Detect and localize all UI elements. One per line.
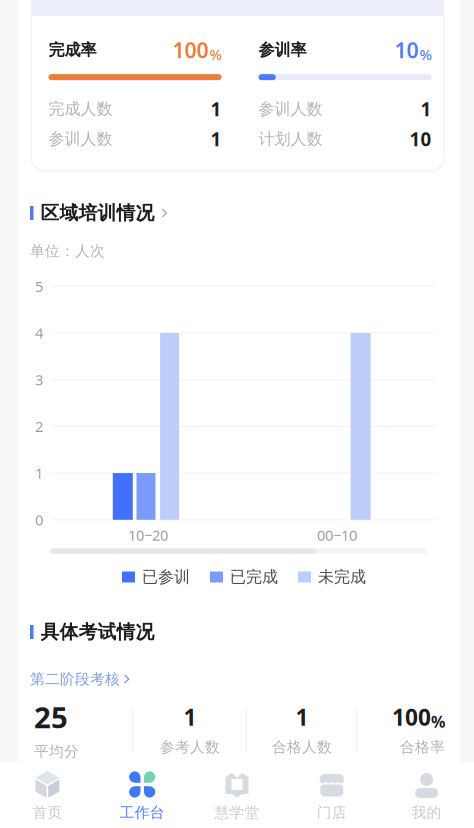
staticText: 门店 xyxy=(317,803,347,821)
button[interactable]: 首页 xyxy=(0,762,95,828)
staticText: 100 xyxy=(392,702,431,732)
staticText: % xyxy=(431,711,445,732)
staticText: 1 xyxy=(183,702,196,732)
staticText: % xyxy=(419,45,431,64)
staticText: 计划人数 xyxy=(258,129,322,149)
staticText: 首页 xyxy=(32,803,62,821)
staticText: 合格人数 xyxy=(272,738,332,756)
staticText: 单位：人次 xyxy=(30,242,105,260)
button[interactable]: 第二阶段考核 xyxy=(30,670,430,688)
staticText: % xyxy=(209,45,221,64)
staticText: 未完成 xyxy=(318,567,366,587)
staticText: 00−10 xyxy=(317,525,357,545)
staticText: 0 xyxy=(35,510,43,530)
staticText: 第二阶段考核 xyxy=(30,670,120,688)
staticText: 10−20 xyxy=(128,525,168,545)
staticText: 100 xyxy=(172,36,208,64)
staticText: 1 xyxy=(420,97,431,121)
button[interactable]: 区域培训情况 xyxy=(30,201,430,224)
button[interactable]: 我的 xyxy=(379,762,474,828)
staticText: 1 xyxy=(295,702,308,732)
staticText: 参考人数 xyxy=(160,738,220,756)
staticText: 已参训 xyxy=(142,567,190,587)
staticText: 1 xyxy=(210,97,221,121)
staticText: 参训人数 xyxy=(258,99,322,119)
button[interactable]: 慧学堂 xyxy=(190,762,284,828)
staticText: 1 xyxy=(210,127,221,151)
staticText: 已完成 xyxy=(230,567,278,587)
staticText: 参训率 xyxy=(258,40,306,60)
staticText: 平均分 xyxy=(34,742,79,760)
staticText: 完成率 xyxy=(48,40,96,60)
staticText: 合格率 xyxy=(400,738,445,756)
staticText: 25 xyxy=(34,697,68,736)
button[interactable]: 工作台 xyxy=(95,762,190,828)
staticText: 我的 xyxy=(412,803,442,821)
staticText: 工作台 xyxy=(120,803,165,821)
staticText: 10 xyxy=(409,127,431,151)
staticText: 区域培训情况 xyxy=(40,201,154,224)
staticText: 3 xyxy=(35,370,43,389)
staticText: 4 xyxy=(35,323,43,343)
staticText: 完成人数 xyxy=(48,99,112,119)
staticText: 2 xyxy=(35,417,43,436)
staticText: 1 xyxy=(35,463,43,483)
staticText: 5 xyxy=(35,276,43,296)
button[interactable]: 门店 xyxy=(284,762,379,828)
staticText: 具体考试情况 xyxy=(40,620,154,643)
staticText: 慧学堂 xyxy=(214,803,259,821)
staticText: 参训人数 xyxy=(48,129,112,149)
staticText: 10 xyxy=(394,36,418,64)
